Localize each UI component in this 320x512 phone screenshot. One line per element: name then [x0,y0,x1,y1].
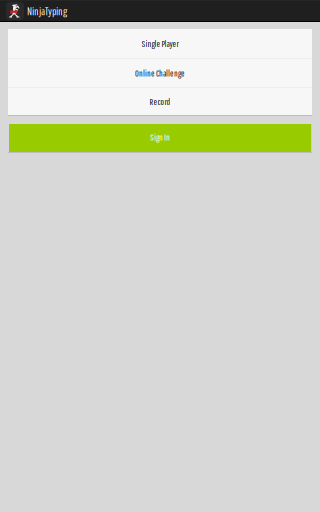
staticText: Sign In [150,132,170,142]
button[interactable]: Online Challenge [8,59,312,88]
button[interactable]: Single Player [8,29,312,59]
staticText: Single Player [141,38,178,49]
staticText: Record [149,96,170,107]
button[interactable]: Record [8,88,312,115]
button[interactable]: NinjaTyping [0,1,320,21]
button[interactable]: Sign In [8,123,312,153]
staticText: Online Challenge [135,68,185,78]
staticText: NinjaTyping [27,4,67,18]
